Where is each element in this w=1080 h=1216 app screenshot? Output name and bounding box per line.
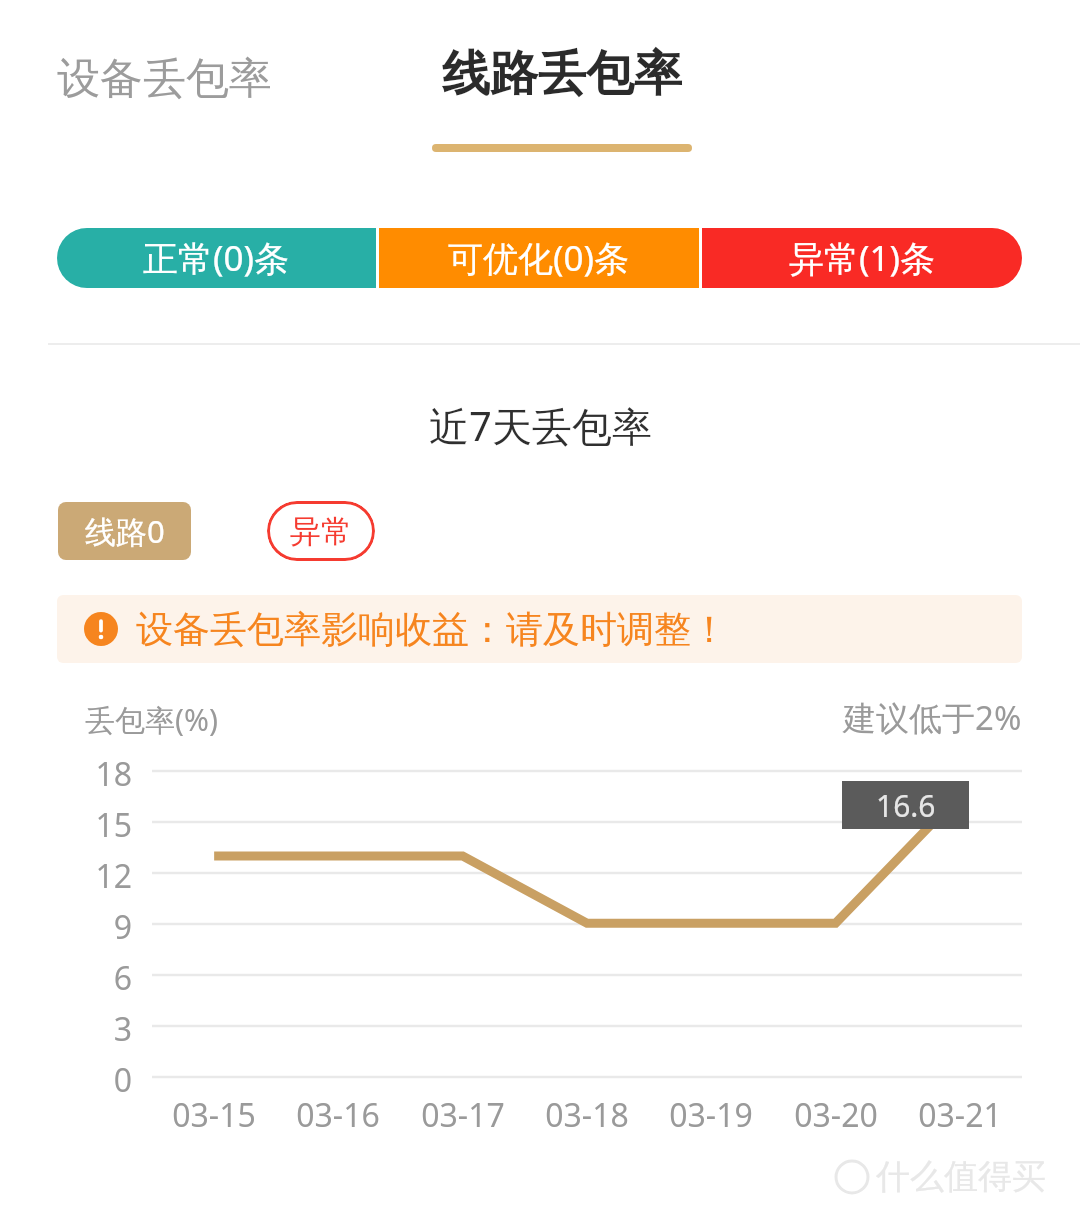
button[interactable]: 线路0 bbox=[58, 502, 191, 560]
staticText: 16.6 bbox=[876, 785, 936, 826]
button[interactable]: 线路丢包率 bbox=[424, 40, 700, 155]
staticText: 03-16 bbox=[296, 1093, 380, 1137]
staticText: 03-15 bbox=[172, 1093, 256, 1137]
staticText: 异常 bbox=[290, 512, 352, 551]
staticText: 设备丢包率影响收益：请及时调整！ bbox=[136, 606, 728, 653]
staticText: 近7天丢包率 bbox=[429, 398, 652, 453]
staticText: 3 bbox=[113, 1007, 132, 1051]
staticText: 03-19 bbox=[669, 1093, 753, 1137]
other: Warning bbox=[84, 612, 118, 646]
staticText: 异常(1)条 bbox=[789, 234, 936, 282]
button[interactable]: 异常 bbox=[267, 501, 375, 561]
staticText: 18 bbox=[95, 752, 132, 796]
button[interactable]: 异常(1)条 bbox=[702, 228, 1022, 288]
staticText: 设备丢包率 bbox=[57, 52, 272, 106]
staticText: 丢包率(%) bbox=[85, 699, 218, 740]
staticText: 6 bbox=[113, 956, 132, 1000]
button[interactable]: 正常(0)条 bbox=[57, 228, 376, 288]
staticText: 0 bbox=[113, 1058, 132, 1102]
staticText: 03-17 bbox=[421, 1093, 505, 1137]
staticText: 9 bbox=[113, 905, 132, 949]
staticText: 03-21 bbox=[918, 1093, 1002, 1137]
staticText: 线路0 bbox=[85, 510, 165, 552]
staticText: 03-18 bbox=[545, 1093, 629, 1137]
staticText: 15 bbox=[95, 803, 132, 847]
staticText: 什么值得买 bbox=[876, 1155, 1046, 1198]
button[interactable]: 设备丢包率 bbox=[57, 44, 325, 114]
staticText: 线路丢包率 bbox=[442, 44, 682, 104]
staticText: 正常(0)条 bbox=[143, 234, 290, 282]
button[interactable]: 可优化(0)条 bbox=[379, 228, 699, 288]
staticText: 可优化(0)条 bbox=[448, 234, 630, 282]
staticText: 03-20 bbox=[794, 1093, 878, 1137]
staticText: 建议低于2% bbox=[843, 695, 1022, 740]
staticText: 12 bbox=[95, 854, 132, 898]
